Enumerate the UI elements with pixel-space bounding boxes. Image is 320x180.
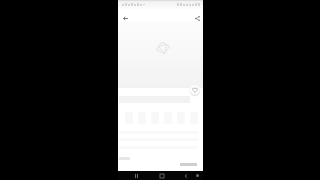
button[interactable]: Add to favourites	[189, 84, 201, 96]
button[interactable]: Home	[157, 171, 166, 180]
button[interactable]: Learn more	[175, 159, 201, 169]
button[interactable]: Recents	[132, 171, 141, 180]
button[interactable]: Share	[192, 13, 202, 23]
button[interactable]: Back	[120, 13, 130, 23]
button[interactable]: Hide keyboard	[193, 171, 202, 180]
button[interactable]: Back	[181, 171, 190, 180]
